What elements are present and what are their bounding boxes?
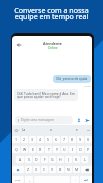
staticText: Olá! Tudo bem? Meu nome é Ana. Em que po… xyxy=(17,91,75,99)
button[interactable]: GIF xyxy=(14,128,18,132)
staticText: X xyxy=(35,167,38,172)
staticText: L xyxy=(84,157,86,162)
button[interactable]: 9 xyxy=(77,136,84,143)
staticText: , xyxy=(29,177,30,182)
button[interactable]: 3 xyxy=(29,136,36,143)
button[interactable]: U xyxy=(61,146,68,153)
staticText: 9 xyxy=(79,137,82,142)
button[interactable]: K xyxy=(73,156,80,163)
button[interactable]: 8 xyxy=(69,136,76,143)
button[interactable]: Olá! Tudo bem? Meu nome é Ana. Em que po… xyxy=(17,91,75,99)
button[interactable]: J xyxy=(65,156,72,163)
button[interactable]: E xyxy=(29,146,36,153)
staticText: V xyxy=(51,167,54,172)
staticText: Q xyxy=(15,147,18,152)
button[interactable]: Olá, preciso de ajuda xyxy=(56,77,88,81)
staticText: 4 xyxy=(39,137,42,142)
staticText: C xyxy=(43,167,46,172)
staticText: E xyxy=(32,147,34,152)
button[interactable]: W xyxy=(21,146,28,153)
staticText: 8 xyxy=(71,137,74,142)
button[interactable]: , xyxy=(25,176,33,183)
staticText: B xyxy=(59,167,62,172)
button[interactable]: ?123 xyxy=(12,176,24,183)
button[interactable] xyxy=(80,176,92,183)
staticText: 3 xyxy=(31,137,34,142)
staticText: G xyxy=(51,157,54,162)
button[interactable]: X xyxy=(33,166,40,173)
button[interactable]: Back xyxy=(14,40,23,49)
button[interactable]: 2 xyxy=(21,136,28,143)
button[interactable]: 0 xyxy=(85,136,92,143)
staticText: M xyxy=(75,167,79,172)
button[interactable]: . xyxy=(71,176,79,183)
staticText: I xyxy=(72,147,74,152)
staticText: J xyxy=(68,157,69,162)
button[interactable]: Y xyxy=(53,146,60,153)
staticText: F xyxy=(44,157,46,162)
button[interactable]: 7 xyxy=(61,136,68,143)
staticText: 6 xyxy=(55,137,58,142)
button[interactable]: More options xyxy=(86,128,90,132)
button[interactable]: 6 xyxy=(53,136,60,143)
staticText: 7 xyxy=(63,137,66,142)
staticText: 1 xyxy=(15,137,18,142)
button[interactable] xyxy=(81,166,92,173)
staticText: Z xyxy=(27,167,30,172)
button[interactable]: I xyxy=(69,146,76,153)
button[interactable]: H xyxy=(57,156,64,163)
staticText: R xyxy=(39,147,42,152)
staticText: Converse com a nossa equipe em tempo rea… xyxy=(14,5,89,21)
staticText: N xyxy=(67,167,70,172)
button[interactable]: N xyxy=(65,166,72,173)
button[interactable]: Digite uma mensagem xyxy=(17,116,71,124)
button[interactable]: C xyxy=(41,166,48,173)
button[interactable]: S xyxy=(25,156,32,163)
staticText: La xyxy=(22,128,26,132)
staticText: Atendente xyxy=(43,41,62,46)
staticText: O xyxy=(79,147,82,152)
button[interactable]: G xyxy=(49,156,56,163)
staticText: A xyxy=(19,157,22,162)
button[interactable]: 5 xyxy=(45,136,52,143)
staticText: U xyxy=(63,147,66,152)
staticText: e xyxy=(76,128,78,132)
button[interactable]: B xyxy=(57,166,64,173)
button[interactable]: D xyxy=(33,156,40,163)
staticText: P xyxy=(87,147,90,152)
button[interactable]: Voice input xyxy=(76,117,81,122)
staticText: H xyxy=(59,157,62,162)
button[interactable]: Z xyxy=(25,166,32,173)
button[interactable]: O xyxy=(77,146,84,153)
staticText: Digite uma mensagem xyxy=(21,118,55,122)
staticText: Online xyxy=(48,46,58,50)
button[interactable]: A xyxy=(16,156,24,163)
button[interactable]: L xyxy=(81,156,88,163)
button[interactable]: Q xyxy=(12,146,20,153)
staticText: W xyxy=(23,147,27,152)
button[interactable]: V xyxy=(49,166,56,173)
staticText: . xyxy=(75,177,76,182)
staticText: 0 xyxy=(87,137,90,142)
button[interactable] xyxy=(12,166,24,173)
staticText: Olá, preciso de ajuda xyxy=(56,77,88,81)
staticText: 10:24 xyxy=(84,84,91,87)
button[interactable]: R xyxy=(37,146,44,153)
button[interactable]: 4 xyxy=(37,136,44,143)
button[interactable]: M xyxy=(73,166,80,173)
staticText: 2 xyxy=(23,137,26,142)
button[interactable]: F xyxy=(41,156,48,163)
button[interactable]: T xyxy=(45,146,52,153)
staticText: ?123 xyxy=(15,178,21,181)
staticText: o xyxy=(50,128,52,132)
button[interactable]: Send xyxy=(84,117,90,123)
staticText: D xyxy=(35,157,38,162)
button[interactable]: 1 xyxy=(12,136,20,143)
staticText: K xyxy=(75,157,78,162)
staticText: 5 xyxy=(47,137,50,142)
staticText: T xyxy=(48,147,50,152)
staticText: Y xyxy=(56,147,58,152)
button[interactable]: P xyxy=(85,146,92,153)
staticText: S xyxy=(28,157,30,162)
